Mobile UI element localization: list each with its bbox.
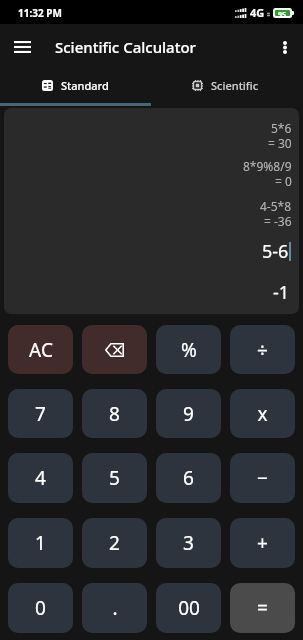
staticText: 5-6 [262, 239, 289, 264]
staticText: 95 [278, 10, 287, 16]
staticText: 4 [35, 465, 46, 491]
button[interactable]: + [230, 518, 295, 568]
button[interactable]: ÷ [230, 325, 295, 374]
staticText: x [257, 401, 268, 427]
staticText: Scientific Calculator [55, 37, 196, 57]
staticText: 0 [35, 595, 46, 621]
button[interactable]: 9 [156, 389, 221, 438]
staticText: 4G [250, 5, 265, 20]
button[interactable]: − [230, 453, 295, 503]
staticText: Standard [61, 78, 109, 93]
button[interactable]: 5 [82, 453, 147, 503]
button[interactable]: Backspace [82, 325, 147, 374]
staticText: 3 [183, 530, 194, 556]
staticText: 1 [35, 530, 46, 556]
staticText: − [257, 465, 268, 491]
staticText: Scientific [211, 78, 259, 93]
button[interactable]: x [230, 389, 295, 438]
staticText: 8 [109, 401, 120, 427]
staticText: + [257, 530, 268, 556]
staticText: ÷ [257, 337, 268, 363]
button[interactable]: 8 [82, 389, 147, 438]
staticText: = 30 [268, 135, 292, 151]
staticText: = [257, 595, 268, 621]
staticText: 2 [109, 530, 120, 556]
staticText: 5 [109, 465, 120, 491]
button[interactable]: Scientific [151, 69, 303, 103]
button[interactable]: 1 [8, 518, 73, 568]
staticText: 6 [183, 465, 194, 491]
staticText: 8*9%8/9 [243, 158, 292, 174]
staticText: 00 [178, 595, 200, 621]
button[interactable]: . [82, 583, 147, 633]
staticText: 9 [183, 401, 194, 427]
button[interactable]: 2 [82, 518, 147, 568]
staticText: AC [29, 337, 53, 363]
staticText: 7 [35, 401, 46, 427]
button[interactable]: = [230, 583, 295, 633]
staticText: 11:32 PM [18, 6, 62, 20]
staticText: . [112, 595, 118, 621]
staticText: % [181, 337, 197, 363]
button[interactable]: Standard [0, 69, 151, 103]
staticText: 4-5*8 [260, 198, 292, 214]
button[interactable]: 0 [8, 583, 73, 633]
button[interactable]: More options [268, 30, 302, 64]
button[interactable]: 7 [8, 389, 73, 438]
button[interactable]: % [156, 325, 221, 374]
button[interactable]: 4 [8, 453, 73, 503]
button[interactable]: 00 [156, 583, 221, 633]
staticText: 5*6 [271, 120, 292, 136]
button[interactable]: Menu [5, 30, 39, 64]
button[interactable]: 6 [156, 453, 221, 503]
staticText: -1 [273, 280, 290, 305]
button[interactable]: AC [8, 325, 73, 374]
staticText: = 0 [275, 173, 292, 189]
staticText: = -36 [264, 213, 292, 229]
button[interactable]: 3 [156, 518, 221, 568]
